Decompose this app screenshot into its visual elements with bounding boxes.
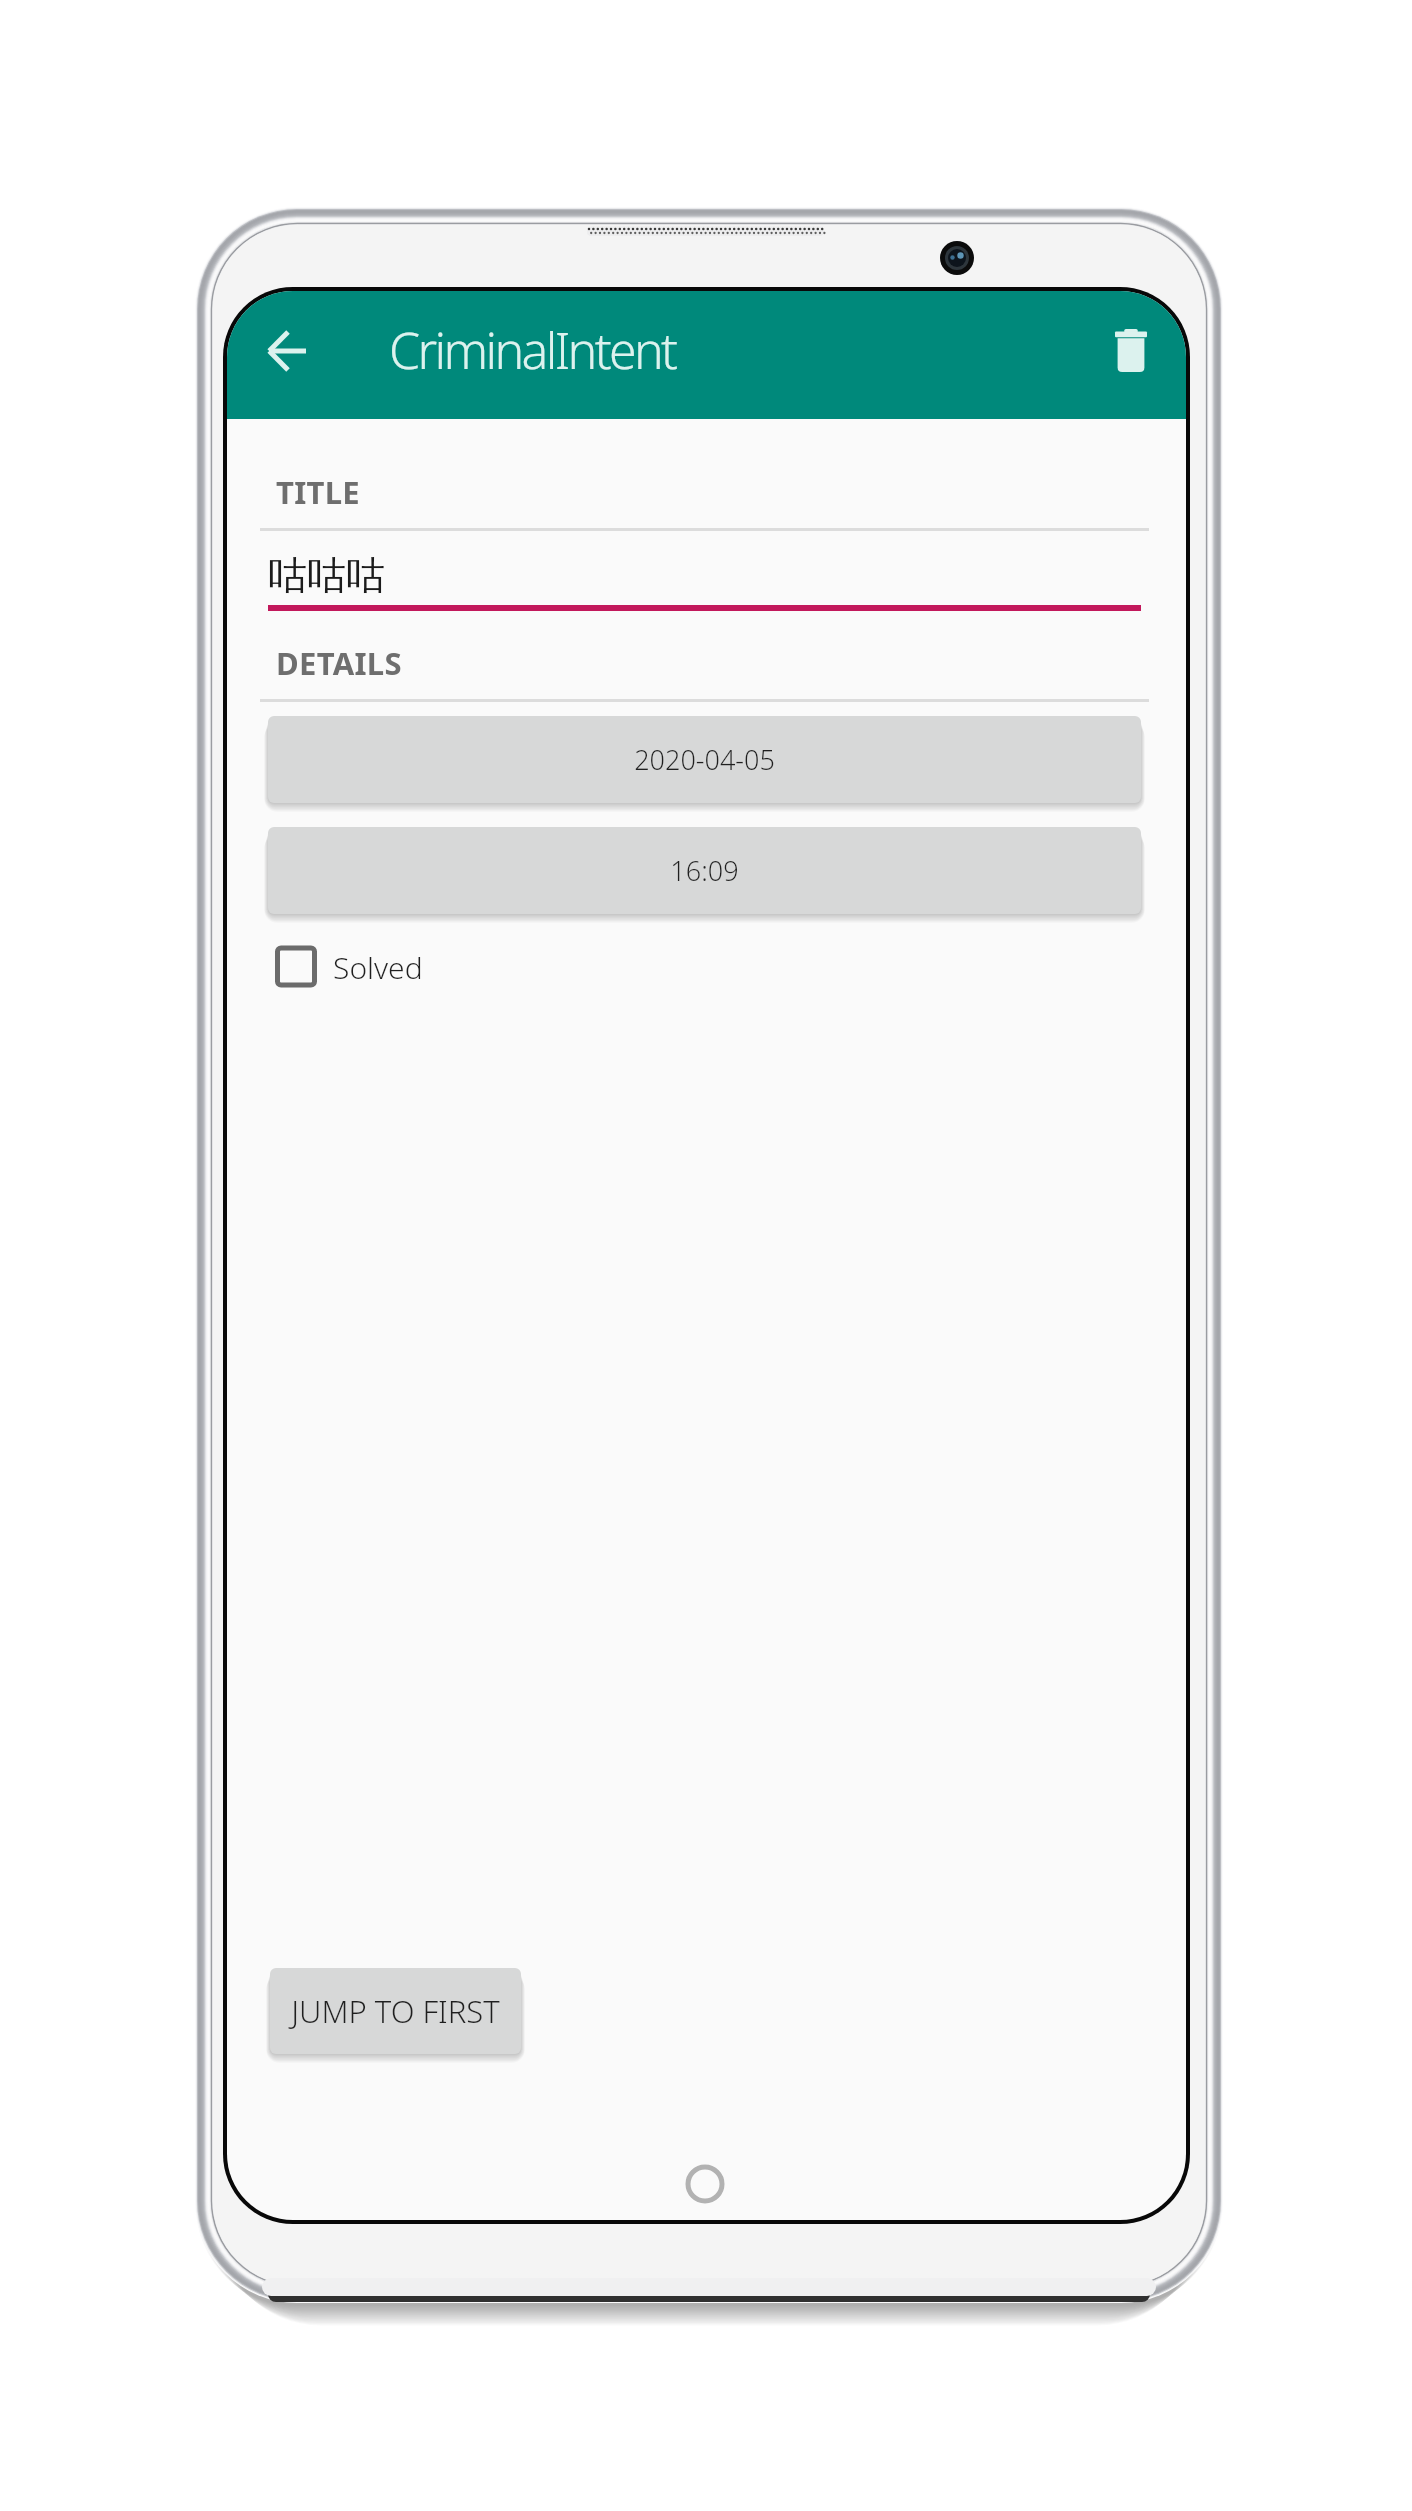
staticText: DETAILS [276,642,402,684]
button[interactable]: Navigate up [231,295,343,407]
staticText: Solved [333,947,423,988]
button[interactable]: 16:09 [268,827,1141,914]
staticText: JUMP TO FIRST [291,1990,500,2032]
staticText: 16:09 [670,852,739,889]
staticText: TITLE [276,471,361,513]
staticText: 咕咕咕 [268,551,385,600]
button[interactable]: JUMP TO FIRST [270,1968,521,2054]
button[interactable]: Solved [267,938,430,996]
staticText: 2020-04-05 [634,741,775,778]
button[interactable]: 2020-04-05 [268,716,1141,803]
button[interactable]: Delete crime [1075,295,1186,407]
staticText: CriminalIntent [389,316,676,384]
